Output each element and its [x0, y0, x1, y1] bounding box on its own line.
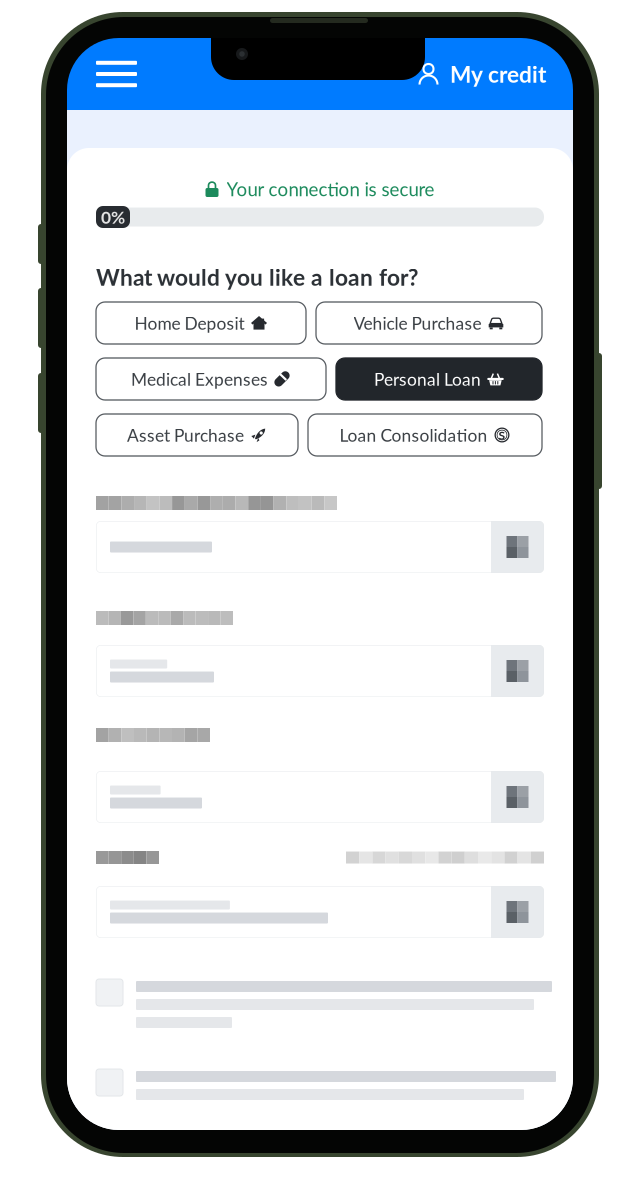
- button[interactable]: [96, 521, 544, 573]
- button[interactable]: [96, 1069, 569, 1100]
- button[interactable]: [96, 979, 565, 1028]
- staticText: Your connection is secure: [226, 178, 434, 200]
- staticText: S: [498, 428, 505, 442]
- button[interactable]: My credit: [418, 38, 573, 110]
- button[interactable]: [96, 771, 544, 823]
- button[interactable]: [96, 645, 544, 697]
- button[interactable]: Medical Expenses: [96, 358, 326, 400]
- staticText: My credit: [450, 60, 546, 88]
- staticText: Loan Consolidation: [339, 425, 487, 445]
- staticText: Home Deposit: [134, 313, 244, 333]
- button[interactable]: Loan Consolidation: [308, 414, 542, 456]
- staticText: Vehicle Purchase: [353, 313, 481, 333]
- staticText: Medical Expenses: [131, 369, 268, 389]
- button[interactable]: Menu: [67, 38, 155, 110]
- button[interactable]: Vehicle Purchase: [316, 302, 542, 344]
- staticText: Personal Loan: [374, 369, 481, 389]
- button[interactable]: Home Deposit: [96, 302, 306, 344]
- button[interactable]: Asset Purchase: [96, 414, 298, 456]
- staticText: What would you like a loan for?: [96, 263, 418, 291]
- staticText: Asset Purchase: [127, 425, 244, 445]
- button[interactable]: Personal Loan: [336, 358, 542, 400]
- button[interactable]: [96, 886, 544, 938]
- staticText: 0%: [101, 207, 125, 227]
